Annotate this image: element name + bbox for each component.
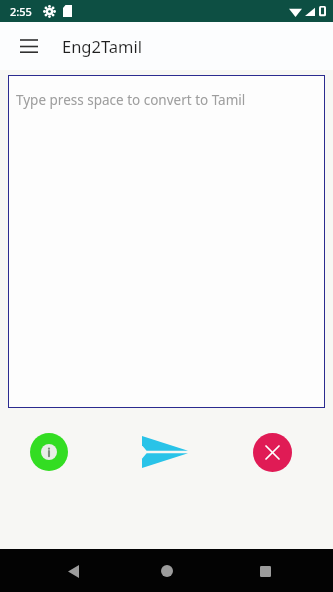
button[interactable]: Type press space to convert to Tamil: [8, 75, 325, 408]
button[interactable]: Info: [30, 433, 68, 471]
button[interactable]: Clear: [253, 433, 292, 472]
button[interactable]: Home: [149, 553, 185, 589]
button[interactable]: Open navigation menu: [10, 27, 48, 65]
button[interactable]: Back: [55, 553, 91, 589]
staticText: Eng2Tamil: [62, 35, 143, 57]
button[interactable]: Recent apps: [247, 553, 283, 589]
button[interactable]: Send: [139, 430, 191, 474]
staticText: Type press space to convert to Tamil: [16, 91, 246, 109]
staticText: 2:55: [10, 4, 32, 19]
